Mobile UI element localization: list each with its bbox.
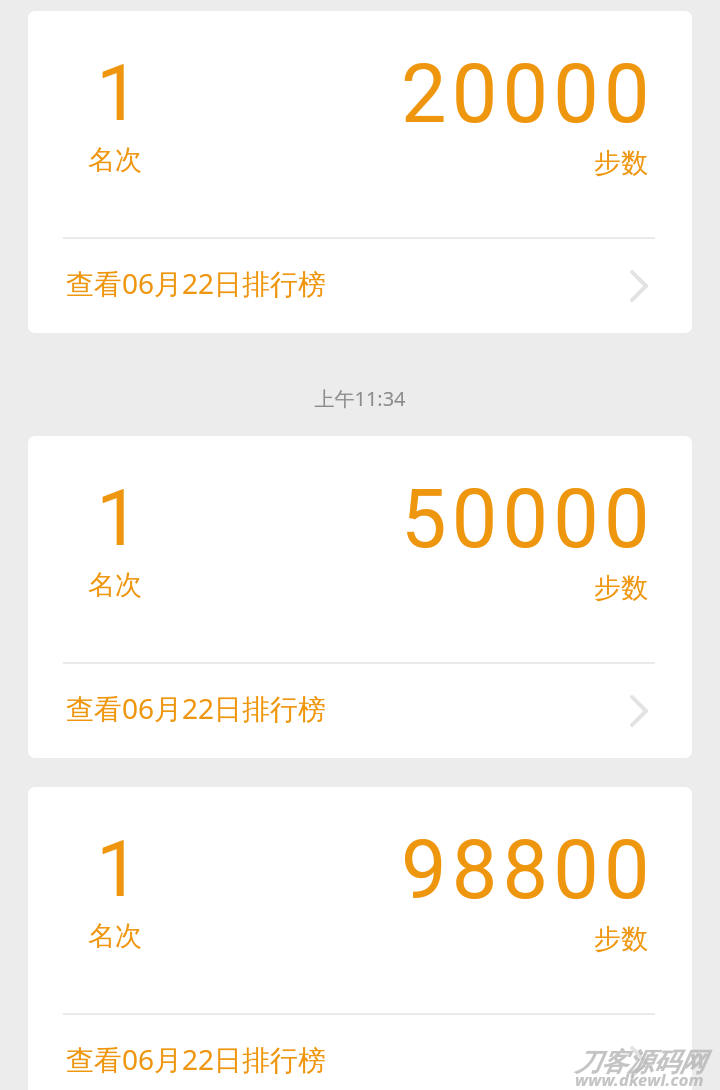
staticText: 1: [96, 825, 136, 915]
staticText: 查看06月22日排行榜: [66, 689, 327, 727]
staticText: 20000: [401, 47, 655, 142]
button[interactable]: 1: [28, 436, 692, 758]
button[interactable]: 查看06月22日排行榜: [28, 238, 692, 333]
staticText: 名次: [88, 919, 142, 953]
staticText: 1: [96, 49, 136, 139]
staticText: 刀客源码网: [575, 1046, 705, 1079]
other: 查看排行榜: [630, 1046, 648, 1078]
other: 查看排行榜: [630, 270, 648, 302]
button[interactable]: 1: [28, 11, 692, 333]
button[interactable]: 查看06月22日排行榜: [28, 663, 692, 758]
staticText: 50000: [401, 472, 655, 567]
staticText: 步数: [594, 571, 648, 605]
staticText: 步数: [594, 922, 648, 956]
staticText: 上午11:34: [314, 385, 406, 412]
other: 查看排行榜: [630, 695, 648, 727]
staticText: www.dkewl.com: [575, 1068, 704, 1090]
button[interactable]: 1: [28, 787, 692, 1090]
button[interactable]: 查看06月22日排行榜: [28, 1014, 692, 1090]
staticText: 名次: [88, 568, 142, 602]
staticText: 查看06月22日排行榜: [66, 264, 327, 302]
staticText: 1: [96, 474, 136, 564]
staticText: 名次: [88, 143, 142, 177]
staticText: 步数: [594, 146, 648, 180]
staticText: 查看06月22日排行榜: [66, 1040, 327, 1078]
staticText: 98800: [401, 823, 655, 918]
